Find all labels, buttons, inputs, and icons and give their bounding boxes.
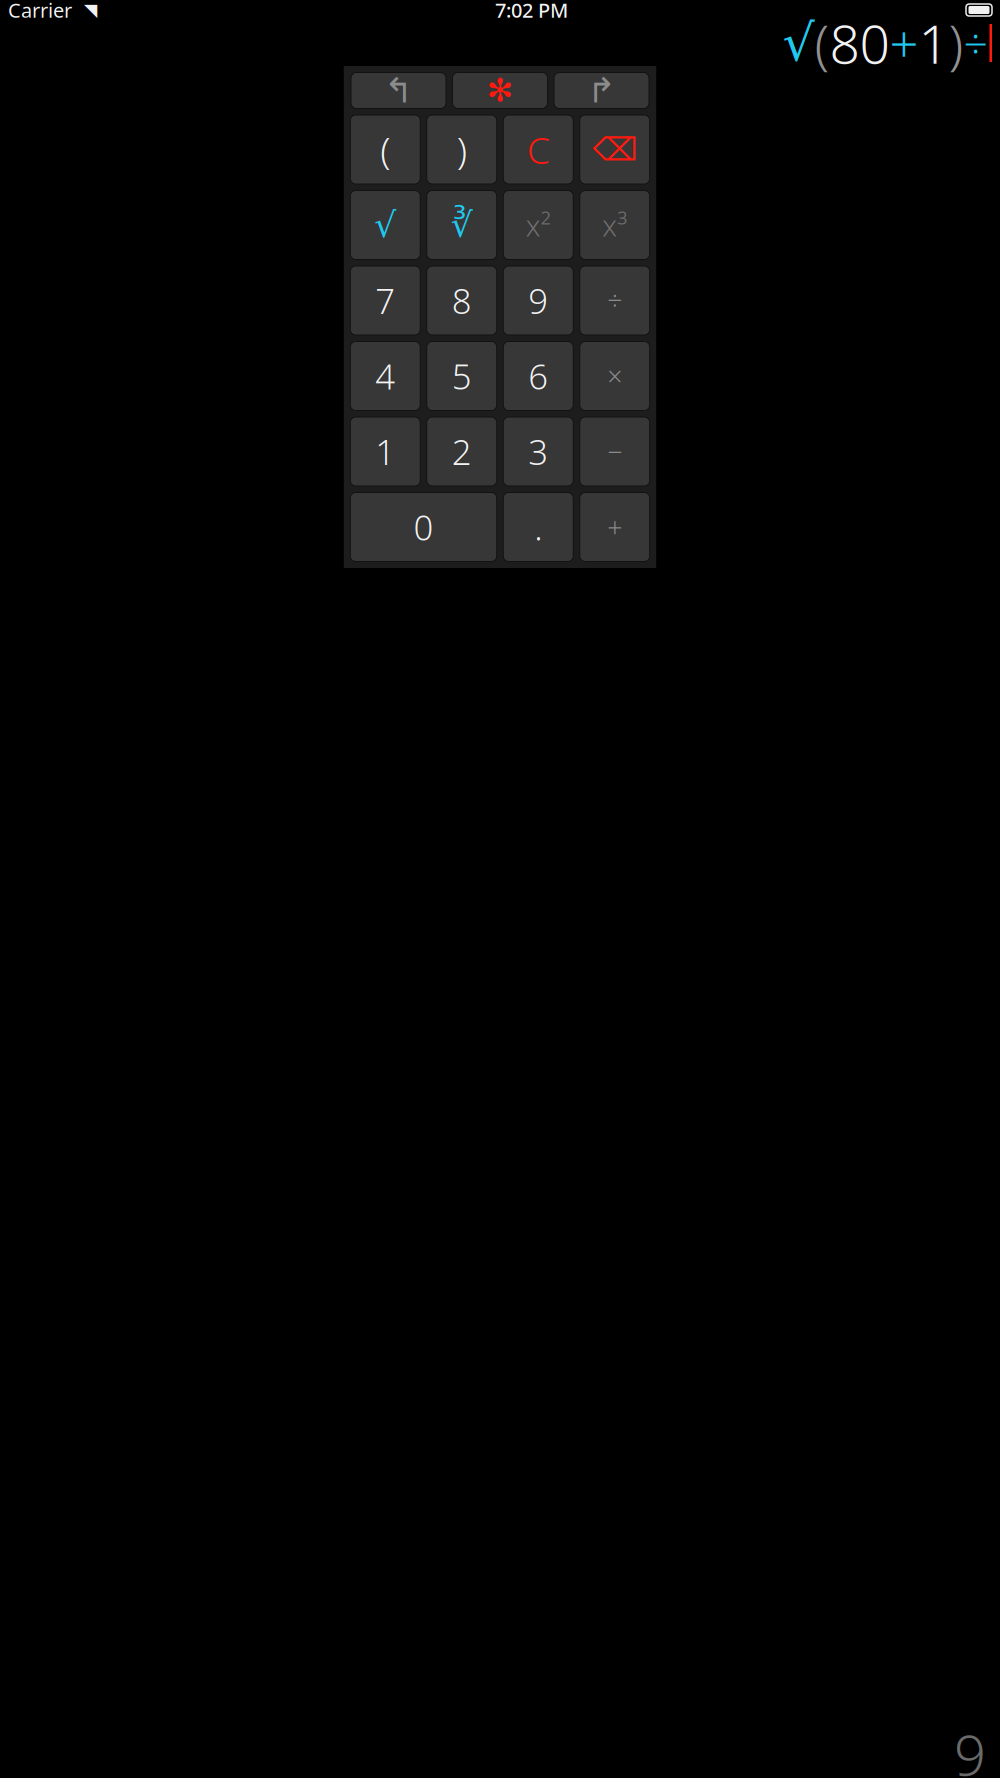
staticText: 7 xyxy=(375,277,395,323)
staticText: . xyxy=(534,504,542,550)
button[interactable]: Redo xyxy=(554,72,649,108)
staticText: 80 xyxy=(829,8,889,78)
staticText: C xyxy=(527,125,550,174)
staticText: 2 xyxy=(452,428,472,474)
staticText: √ xyxy=(374,205,396,245)
button[interactable]: 0 xyxy=(350,492,497,561)
button[interactable]: Delete xyxy=(580,115,650,184)
button[interactable]: Plus xyxy=(580,492,650,561)
staticText: 7:02 PM xyxy=(495,0,568,23)
button[interactable]: 5 xyxy=(427,341,497,410)
staticText: 8 xyxy=(452,277,472,323)
button[interactable]: 7 xyxy=(350,266,420,335)
staticText: + xyxy=(607,509,622,545)
button[interactable]: 3 xyxy=(503,417,573,486)
staticText: Carrier xyxy=(8,0,72,23)
staticText: 1 xyxy=(375,428,395,474)
staticText: 9 xyxy=(528,277,548,323)
staticText: x³ xyxy=(602,205,627,244)
staticText: ÷ xyxy=(607,283,622,318)
button[interactable]: Divide xyxy=(580,266,650,335)
button[interactable]: 9 xyxy=(503,266,573,335)
staticText: ( xyxy=(814,8,829,78)
staticText: 1 xyxy=(918,8,948,78)
button[interactable]: Undo xyxy=(351,72,446,108)
button[interactable]: 2 xyxy=(427,417,497,486)
staticText: 6 xyxy=(528,353,548,399)
staticText: ↱ xyxy=(587,71,616,110)
button[interactable]: Multiply xyxy=(580,341,650,410)
button[interactable]: Clear xyxy=(503,115,573,184)
staticText: ◥ xyxy=(72,0,97,20)
staticText: ↰ xyxy=(384,71,413,110)
button[interactable]: Squared xyxy=(503,190,573,259)
button[interactable]: Settings xyxy=(452,72,547,108)
staticText: 3 xyxy=(528,428,548,474)
button[interactable]: Square root xyxy=(350,190,420,259)
button[interactable]: ) xyxy=(427,115,497,184)
staticText: x² xyxy=(526,205,551,244)
staticText: + xyxy=(889,9,918,77)
staticText: × xyxy=(607,358,622,394)
staticText: 0 xyxy=(413,504,433,550)
button[interactable]: Minus xyxy=(580,417,650,486)
staticText: ∛ xyxy=(451,205,473,245)
button[interactable]: 1 xyxy=(350,417,420,486)
staticText: 5 xyxy=(452,353,472,399)
staticText: 4 xyxy=(375,353,395,399)
staticText: √ xyxy=(782,14,814,72)
button[interactable]: 4 xyxy=(350,341,420,410)
staticText: ⌫ xyxy=(592,131,637,168)
staticText: ✻ xyxy=(486,72,513,109)
staticText: ) xyxy=(457,125,467,174)
button[interactable]: 6 xyxy=(503,341,573,410)
staticText: ) xyxy=(948,8,963,78)
button[interactable]: ( xyxy=(350,115,420,184)
button[interactable]: Decimal point xyxy=(503,492,573,561)
staticText: 9 xyxy=(954,1717,986,1778)
button[interactable]: 8 xyxy=(427,266,497,335)
button[interactable]: Cube root xyxy=(427,190,497,259)
staticText: − xyxy=(607,434,622,469)
button[interactable]: Cubed xyxy=(580,190,650,259)
staticText: ( xyxy=(380,125,390,174)
staticText: ÷ xyxy=(963,15,987,71)
